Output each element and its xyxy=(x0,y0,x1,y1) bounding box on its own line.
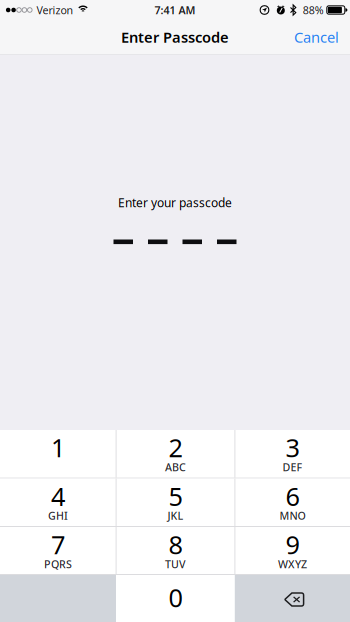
button[interactable]: 1 xyxy=(0,430,116,478)
button[interactable]: Delete xyxy=(235,575,350,622)
staticText: 88% xyxy=(303,3,324,17)
staticText: 1 xyxy=(51,431,65,464)
staticText: JKL xyxy=(167,508,183,523)
staticText: 5 xyxy=(168,479,182,513)
button[interactable]: 8 xyxy=(116,527,235,574)
button[interactable]: 5 xyxy=(116,479,235,526)
staticText: Enter your passcode xyxy=(118,194,232,210)
button[interactable]: 9 xyxy=(235,527,350,574)
staticText: 4 xyxy=(51,479,65,513)
staticText: MNO xyxy=(279,508,305,523)
staticText: 7:41 AM xyxy=(154,3,195,17)
button[interactable]: 2 xyxy=(116,430,235,478)
button[interactable]: Cancel xyxy=(282,20,350,54)
button[interactable]: 7 xyxy=(0,527,116,574)
staticText: TUV xyxy=(165,557,186,571)
staticText: GHI xyxy=(48,508,68,523)
staticText: 2 xyxy=(168,431,182,464)
staticText: 3 xyxy=(285,431,299,464)
staticText: ABC xyxy=(165,460,186,474)
staticText: 0 xyxy=(168,581,182,614)
button[interactable]: 0 xyxy=(116,575,235,622)
staticText: Cancel xyxy=(294,27,339,47)
staticText: 6 xyxy=(285,479,299,513)
staticText: 9 xyxy=(285,528,299,561)
staticText: DEF xyxy=(282,460,302,474)
button[interactable]: 4 xyxy=(0,479,116,526)
button[interactable]: 3 xyxy=(235,430,350,478)
staticText: WXYZ xyxy=(278,557,307,571)
staticText: PQRS xyxy=(44,557,72,571)
staticText: Verizon xyxy=(36,3,73,17)
staticText: Enter Passcode xyxy=(121,27,229,47)
staticText: 7 xyxy=(51,528,65,561)
button[interactable]: 6 xyxy=(235,479,350,526)
staticText: 8 xyxy=(168,528,182,561)
